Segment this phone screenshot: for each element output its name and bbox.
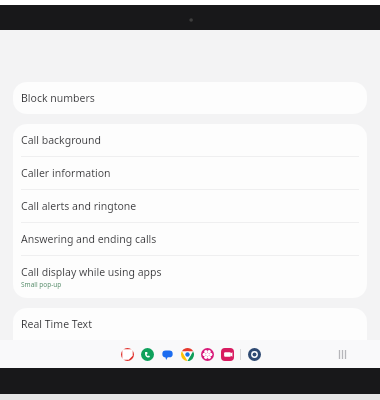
staticText: Small pop-up — [21, 280, 62, 289]
staticText: Answering and ending calls — [21, 232, 157, 246]
button[interactable]: Chrome — [180, 347, 194, 361]
button[interactable]: Answering and ending calls — [13, 223, 367, 255]
button[interactable]: Call background — [13, 124, 367, 156]
button[interactable]: Call display while using apps — [13, 256, 367, 298]
staticText: Call alerts and ringtone — [21, 199, 137, 213]
button[interactable]: Call alerts and ringtone — [13, 190, 367, 222]
button[interactable]: Video Call — [13, 341, 367, 368]
button[interactable]: Video Call toggle — [324, 350, 358, 359]
button[interactable]: Caller information — [13, 157, 367, 189]
staticText: Block numbers — [21, 91, 95, 105]
button[interactable]: Block numbers — [13, 82, 367, 114]
button[interactable]: Recent apps — [334, 346, 350, 362]
staticText: Caller information — [21, 166, 111, 180]
staticText: Call background — [21, 133, 102, 147]
button[interactable]: Keep Notes — [120, 347, 134, 361]
button[interactable]: Messages — [160, 347, 174, 361]
staticText: Real Time Text — [21, 317, 92, 331]
button[interactable]: Camera — [247, 347, 261, 361]
staticText: Call display while using apps — [21, 265, 162, 279]
button[interactable]: Photos — [200, 347, 214, 361]
button[interactable]: Phone — [140, 347, 154, 361]
button[interactable]: Real Time Text — [13, 308, 367, 340]
button[interactable]: Instagram — [220, 347, 234, 361]
